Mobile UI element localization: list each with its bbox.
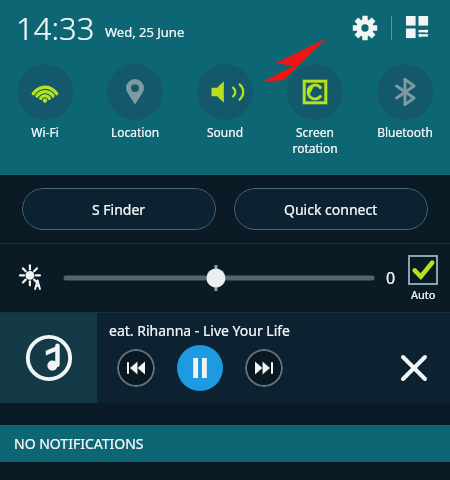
- button[interactable]: Location: [90, 62, 180, 140]
- button[interactable]: Previous: [117, 349, 155, 387]
- button[interactable]: Edit quick settings: [398, 8, 438, 48]
- staticText: Quick connect: [284, 200, 378, 219]
- button[interactable]: Music player: [0, 313, 97, 403]
- button[interactable]: S Finder: [22, 188, 216, 230]
- staticText: 14:33: [16, 7, 95, 49]
- staticText: NO NOTIFICATIONS: [14, 434, 144, 453]
- staticText: Wed, 25 June: [105, 23, 185, 41]
- staticText: Sound: [180, 124, 270, 140]
- button[interactable]: [66, 260, 372, 296]
- button[interactable]: Wi-Fi: [0, 62, 90, 140]
- button[interactable]: Settings: [345, 8, 385, 48]
- button[interactable]: Pause: [177, 345, 223, 391]
- button[interactable]: Bluetooth: [360, 62, 450, 140]
- staticText: eat. Rihanna - Live Your Life: [109, 321, 290, 340]
- button[interactable]: Quick connect: [234, 188, 428, 230]
- button[interactable]: Screen rotation: [270, 62, 360, 156]
- staticText: 0: [386, 267, 396, 289]
- button[interactable]: Next: [245, 349, 283, 387]
- button[interactable]: Auto brightness: [14, 260, 50, 296]
- staticText: Location: [90, 124, 180, 140]
- staticText: S Finder: [92, 200, 146, 219]
- staticText: Screen rotation: [270, 124, 360, 156]
- button[interactable]: Sound: [180, 62, 270, 140]
- staticText: Auto: [411, 287, 436, 302]
- button[interactable]: Close: [392, 346, 436, 390]
- staticText: Wi-Fi: [0, 124, 90, 140]
- button[interactable]: Auto: [408, 255, 438, 302]
- staticText: Bluetooth: [360, 124, 450, 140]
